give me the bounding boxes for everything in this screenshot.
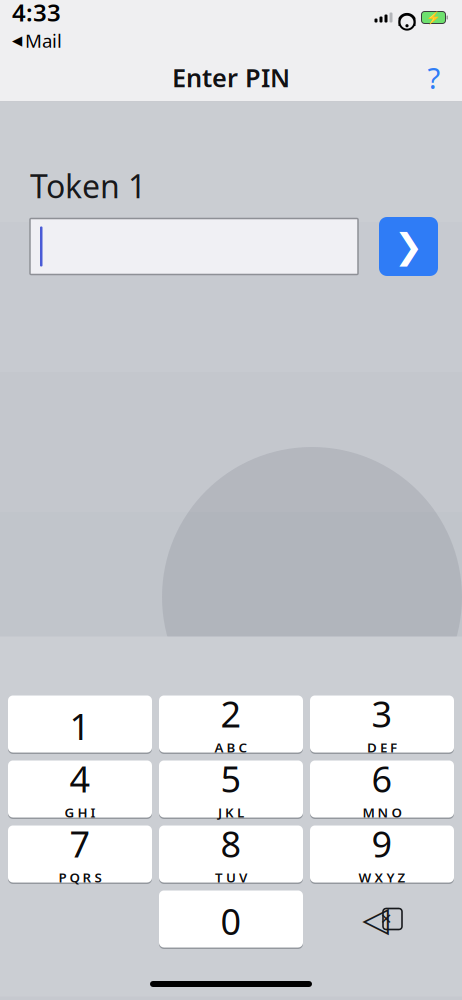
staticText: Token 1 <box>30 164 146 207</box>
staticText: W X Y Z <box>358 869 405 886</box>
staticText: P Q R S <box>58 869 101 886</box>
button[interactable]: 8 <box>159 825 303 882</box>
button[interactable]: 9 <box>310 825 454 882</box>
staticText: ◀ <box>12 33 22 48</box>
staticText: 9 <box>371 820 392 867</box>
staticText: 1 <box>69 702 90 750</box>
staticText: ❯ <box>394 227 423 266</box>
button[interactable]: 3 <box>310 695 454 752</box>
staticText: 4 <box>69 755 90 802</box>
button[interactable]: ◀ <box>12 28 62 53</box>
staticText: 8 <box>220 820 241 867</box>
staticText: ⚡ <box>426 11 441 24</box>
button[interactable]: 5 <box>159 760 303 817</box>
staticText: 2 <box>220 690 241 737</box>
staticText: Enter PIN <box>172 61 290 94</box>
staticText: Mail <box>25 28 62 53</box>
staticText: 0 <box>220 897 241 945</box>
staticText: G H I <box>64 804 95 821</box>
button[interactable]: 4 <box>8 760 152 817</box>
staticText: 6 <box>371 755 392 802</box>
button[interactable]: 1 <box>8 695 152 752</box>
button[interactable]: Submit token <box>379 217 438 276</box>
staticText: 3 <box>371 690 392 737</box>
button[interactable]: 7 <box>8 825 152 882</box>
staticText: A B C <box>214 739 247 756</box>
staticText: D E F <box>367 739 397 756</box>
staticText: ◁ <box>362 899 389 939</box>
staticText: M N O <box>362 804 401 821</box>
button[interactable]: Delete <box>310 890 454 947</box>
staticText: J K L <box>218 804 244 821</box>
staticText: ✕ <box>380 911 392 927</box>
button[interactable]: 6 <box>310 760 454 817</box>
staticText: 4:33 <box>12 0 61 28</box>
staticText: 5 <box>220 755 241 802</box>
staticText: ? <box>427 58 440 97</box>
button[interactable]: 0 <box>159 890 303 947</box>
staticText: T U V <box>215 869 247 886</box>
staticText: 7 <box>69 820 90 867</box>
button[interactable]: Help <box>412 57 456 97</box>
button[interactable]: 2 <box>159 695 303 752</box>
